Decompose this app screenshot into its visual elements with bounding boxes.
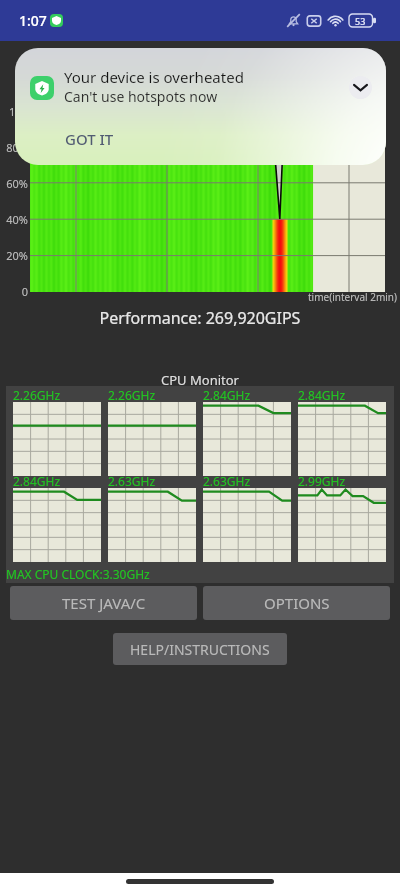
staticText: CPU Monitor [0, 371, 400, 389]
staticText: 2.63GHz [108, 473, 156, 489]
staticText: GOT IT [65, 129, 114, 149]
staticText: 40% [0, 212, 28, 227]
staticText: 60% [0, 176, 28, 191]
staticText: Your device is overheated [64, 67, 244, 87]
staticText: MAX CPU CLOCK:3.30GHz [6, 566, 150, 582]
staticText: 100% [0, 104, 28, 134]
staticText: HELP/INSTRUCTIONS [130, 640, 270, 659]
staticText: Performance: 269,920GIPS [0, 307, 400, 329]
button[interactable]: HELP/INSTRUCTIONS [113, 633, 287, 665]
staticText: 2.84GHz [13, 473, 61, 489]
staticText: TEST JAVA/C [62, 593, 146, 613]
staticText: 2.26GHz [13, 387, 61, 403]
staticText: 20% [0, 248, 28, 263]
staticText: 2.84GHz [203, 387, 251, 403]
staticText: 0 [0, 284, 28, 299]
button[interactable]: TEST JAVA/C [10, 586, 197, 620]
button[interactable]: Expand notification [349, 76, 372, 99]
button[interactable]: OPTIONS [203, 586, 390, 620]
staticText: Can't use hotspots now [64, 87, 218, 106]
button[interactable]: GOT IT [65, 129, 114, 149]
staticText: 2.26GHz [108, 387, 156, 403]
staticText: OPTIONS [264, 593, 330, 613]
staticText: time(interval 2min) [308, 290, 398, 304]
staticText: 2.84GHz [298, 387, 346, 403]
staticText: 2.63GHz [203, 473, 251, 489]
staticText: 1:07 [19, 11, 47, 30]
staticText: 53 [355, 15, 366, 27]
staticText: 2.99GHz [298, 473, 346, 489]
staticText: 80% [0, 140, 28, 155]
button[interactable]: Your device is overheated [15, 48, 386, 165]
